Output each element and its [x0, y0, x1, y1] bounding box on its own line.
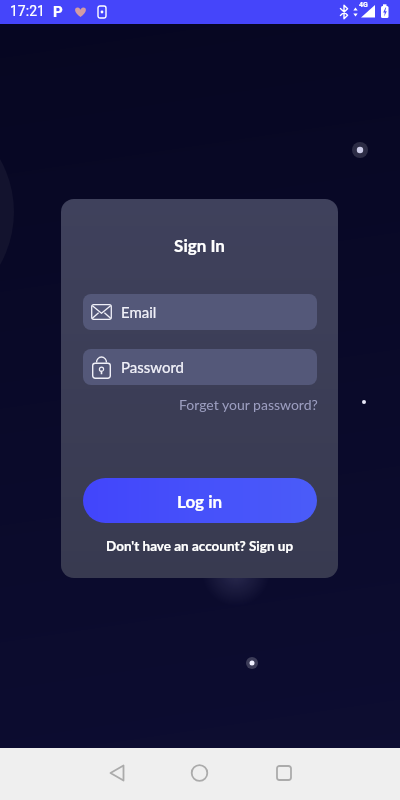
staticText: 17:21: [10, 3, 45, 19]
staticText: Don't have an account? Sign up: [106, 538, 294, 554]
button[interactable]: [270, 762, 298, 786]
staticText: P: [53, 3, 63, 21]
button[interactable]: Log in: [83, 478, 317, 523]
staticText: Sign In: [61, 235, 338, 255]
staticText: Log in: [177, 491, 223, 511]
staticText: Forget your password?: [179, 396, 318, 413]
staticText: Password: [121, 358, 184, 376]
staticText: Email: [121, 303, 157, 321]
button[interactable]: [103, 762, 131, 786]
button[interactable]: [186, 762, 214, 786]
button[interactable]: Forget your password?: [179, 396, 318, 413]
button[interactable]: Password: [83, 349, 317, 385]
staticText: 4G: [359, 1, 368, 9]
button[interactable]: Email: [83, 294, 317, 330]
button[interactable]: Don't have an account? Sign up: [106, 538, 294, 554]
